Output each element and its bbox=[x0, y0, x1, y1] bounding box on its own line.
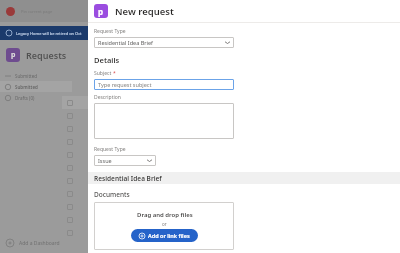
staticText: Add or link files bbox=[148, 232, 190, 239]
staticText: Residential Idea Brief bbox=[98, 39, 225, 46]
staticText: Legacy Home will be retired on Oct bbox=[16, 31, 82, 36]
button[interactable]: Residential Idea Brief bbox=[94, 37, 234, 48]
staticText: p bbox=[11, 50, 16, 60]
button[interactable]: Drag and drop files bbox=[94, 202, 234, 250]
staticText: New request bbox=[115, 5, 174, 18]
staticText: Issue bbox=[98, 157, 147, 164]
staticText: Requests bbox=[26, 49, 67, 61]
staticText: * bbox=[113, 70, 116, 77]
staticText: Request Type bbox=[94, 146, 126, 153]
button[interactable]: Drafts (0) bbox=[0, 92, 72, 103]
button[interactable]: Add or link files bbox=[131, 229, 198, 242]
staticText: Add a Dashboard bbox=[19, 240, 60, 247]
staticText: p bbox=[98, 6, 104, 17]
staticText: Type request subject bbox=[98, 81, 152, 88]
staticText: Submitted bbox=[15, 73, 37, 79]
staticText: Drafts (0) bbox=[15, 95, 35, 101]
staticText: Details bbox=[94, 55, 120, 65]
staticText: Residential Idea Brief bbox=[94, 174, 162, 183]
button[interactable]: Issue bbox=[94, 155, 156, 166]
button[interactable]: Submitted bbox=[0, 81, 72, 92]
button[interactable] bbox=[94, 103, 234, 139]
other: Open dropdown bbox=[225, 40, 230, 45]
staticText: Request Type bbox=[94, 28, 126, 35]
staticText: Description bbox=[94, 94, 121, 101]
button[interactable]: Submitted bbox=[0, 70, 72, 81]
staticText: Submitted bbox=[15, 84, 38, 90]
other: Open dropdown bbox=[147, 158, 152, 163]
staticText: Drag and drop files bbox=[137, 211, 193, 219]
button[interactable]: Type request subject bbox=[94, 79, 234, 90]
staticText: Documents bbox=[94, 190, 130, 199]
staticText: or bbox=[162, 221, 167, 227]
staticText: Pin current page bbox=[21, 9, 53, 14]
staticText: Subject bbox=[94, 70, 112, 77]
